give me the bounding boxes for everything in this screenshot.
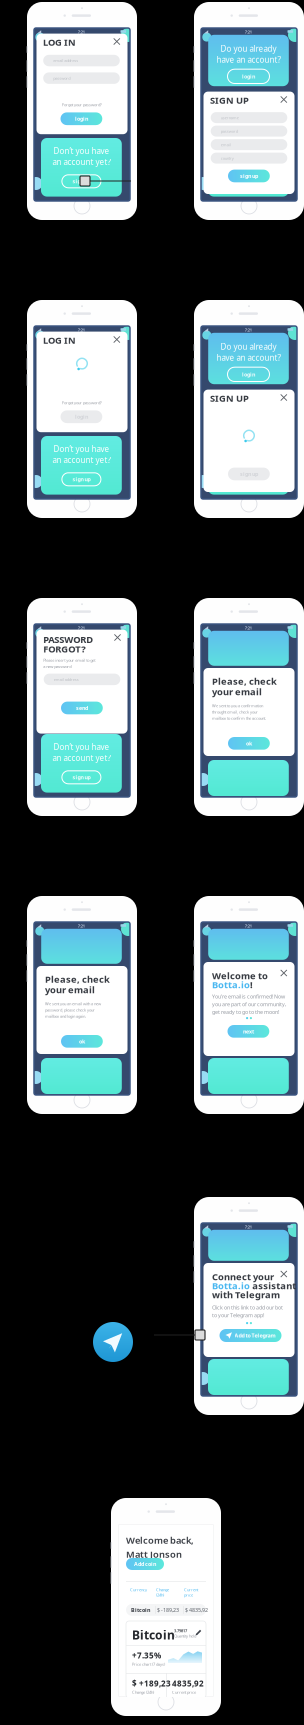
staticText: +7.35% xyxy=(132,1650,161,1661)
staticText: Change xyxy=(156,1587,169,1592)
staticText: Current price xyxy=(172,1689,196,1695)
staticText: 4835,92 xyxy=(172,1678,204,1689)
staticText: Matt Jonson xyxy=(126,1548,182,1560)
button[interactable]: Edit xyxy=(194,1628,203,1637)
staticText: 7:21 xyxy=(245,923,252,928)
staticText: We sent you an email with a new xyxy=(45,1001,101,1006)
staticText: mailbox to confirm the account. xyxy=(212,716,266,721)
button[interactable]: sign up xyxy=(62,473,101,486)
staticText: your email xyxy=(212,685,262,698)
staticText: Current xyxy=(184,1587,198,1592)
staticText: an account yet? xyxy=(52,455,110,465)
staticText: get ready to go to the moon! xyxy=(212,1008,279,1015)
staticText: send xyxy=(76,704,88,711)
staticText: Click on this link to add our bot xyxy=(212,1304,283,1311)
staticText: Do you already xyxy=(53,341,109,352)
staticText: Botta.io xyxy=(212,1279,250,1292)
staticText: price xyxy=(184,1592,193,1598)
button[interactable]: ok xyxy=(228,737,270,750)
staticText: Price chart (7 days) xyxy=(132,1661,165,1667)
staticText: sign up xyxy=(72,476,90,483)
staticText: 7:21 xyxy=(245,625,252,630)
staticText: Botta.io xyxy=(212,978,250,991)
staticText: have an account? xyxy=(49,650,113,661)
staticText: We sent to you a confirmation xyxy=(212,703,263,708)
staticText: Connect your xyxy=(212,1270,274,1283)
button[interactable]: login xyxy=(60,69,102,83)
button[interactable]: Add to Telegram xyxy=(219,1329,281,1342)
staticText: Please, check xyxy=(45,973,110,985)
button[interactable]: login xyxy=(60,665,102,679)
staticText: sign up xyxy=(240,470,258,477)
staticText: 7:21 xyxy=(245,1224,252,1229)
button[interactable]: send xyxy=(61,702,103,714)
staticText: an account yet? xyxy=(52,753,110,763)
button[interactable]: Close xyxy=(111,333,123,345)
staticText: Forgot your password? xyxy=(62,102,102,107)
button[interactable]: ok xyxy=(61,1035,103,1048)
button[interactable]: Close xyxy=(278,93,290,105)
staticText: FORGOT? xyxy=(43,643,85,655)
button[interactable]: login xyxy=(60,367,102,381)
button[interactable]: Close xyxy=(278,1268,290,1280)
staticText: login xyxy=(242,371,255,378)
button[interactable]: sign up xyxy=(229,473,268,486)
staticText: an account yet? xyxy=(219,157,277,167)
staticText: username xyxy=(221,115,239,120)
button[interactable]: sign up xyxy=(62,771,101,784)
staticText: assistant xyxy=(252,1279,296,1292)
staticText: ! xyxy=(250,978,253,991)
staticText: sign up xyxy=(239,178,257,185)
staticText: your email xyxy=(45,983,95,996)
button[interactable]: Close xyxy=(278,967,290,979)
button[interactable]: sign up xyxy=(228,468,270,480)
staticText: Bitcoin xyxy=(132,1627,175,1643)
staticText: 3.79817 xyxy=(174,1628,187,1633)
button[interactable]: login xyxy=(60,410,102,423)
staticText: mailbox and login again. xyxy=(45,1014,86,1019)
staticText: Welcome to xyxy=(212,969,268,982)
button[interactable]: sign up xyxy=(229,175,268,188)
staticText: country xyxy=(221,155,234,161)
button[interactable]: sign up xyxy=(62,175,101,188)
staticText: email address xyxy=(53,58,78,63)
staticText: password xyxy=(53,75,70,81)
staticText: Currency xyxy=(130,1587,147,1592)
staticText: Do you already xyxy=(220,341,276,352)
staticText: Please insert your email to get xyxy=(43,658,95,663)
staticText: sign up xyxy=(240,172,258,179)
staticText: Do you already xyxy=(53,43,109,54)
staticText: ok xyxy=(246,740,252,747)
staticText: Please, check xyxy=(212,675,277,687)
staticText: 7:21 xyxy=(78,923,85,928)
staticText: have an account? xyxy=(49,352,113,363)
staticText: login xyxy=(75,413,88,420)
button[interactable]: login xyxy=(227,367,269,381)
button[interactable]: login xyxy=(60,112,102,125)
staticText: sign up xyxy=(239,476,257,483)
staticText: sign up xyxy=(72,178,90,185)
staticText: login xyxy=(75,115,88,122)
staticText: $ 4835,92 xyxy=(185,1606,208,1613)
button[interactable]: login xyxy=(227,69,269,83)
staticText: next xyxy=(243,1028,254,1035)
button[interactable]: Close xyxy=(278,391,290,403)
staticText: Forgot your password? xyxy=(62,400,102,405)
staticText: LOG IN xyxy=(43,36,76,48)
staticText: login xyxy=(242,73,255,80)
staticText: Don’t you have xyxy=(53,145,109,156)
button[interactable]: next xyxy=(227,1025,269,1038)
button[interactable]: Add coin xyxy=(126,1558,164,1570)
staticText: SIGN UP xyxy=(210,392,249,404)
button[interactable]: sign up xyxy=(228,170,270,182)
staticText: Don’t you have xyxy=(220,145,276,156)
staticText: throught email, check your xyxy=(212,709,258,715)
button[interactable]: Close xyxy=(111,35,123,47)
button[interactable]: Close xyxy=(111,631,123,643)
staticText: Bitcoin xyxy=(131,1606,150,1613)
staticText: SIGN UP xyxy=(210,94,249,106)
staticText: to your Telegram app! xyxy=(212,1312,264,1319)
